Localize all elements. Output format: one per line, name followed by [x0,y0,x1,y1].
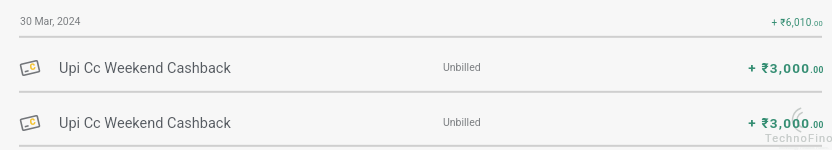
other: Cashback voucher [18,58,42,78]
staticText: Unbilled [443,116,481,128]
other: Cashback voucher [18,113,42,133]
staticText: Upi Cc Weekend Cashback [59,60,231,77]
staticText: 30 Mar, 2024 [20,15,81,27]
staticText: + ₹3,000.00 [674,60,824,76]
staticText: TechnoFino [765,132,832,145]
staticText: + ₹6,010.00 [673,17,823,29]
staticText: Upi Cc Weekend Cashback [59,115,231,132]
staticText: + ₹3,000.00 [674,115,824,131]
staticText: Unbilled [443,61,481,73]
button[interactable]: 30 Mar, 2024 [0,0,832,36]
staticText: Technology. Finance. Future. [778,145,829,150]
button[interactable]: Cashback voucher [0,37,832,91]
button[interactable]: Cashback voucher [0,92,832,146]
